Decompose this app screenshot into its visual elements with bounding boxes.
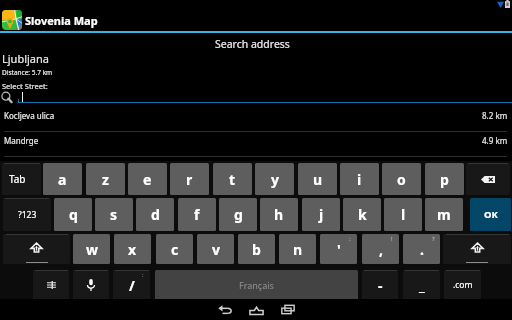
staticText: s — [110, 205, 118, 224]
staticText: h — [274, 205, 284, 224]
button[interactable]: - — [362, 270, 398, 300]
button[interactable]: q — [54, 198, 92, 231]
button[interactable]: g — [219, 198, 257, 231]
staticText: / — [129, 276, 135, 295]
staticText: x — [128, 240, 137, 259]
staticText: u — [313, 170, 323, 189]
staticText: , — [379, 240, 383, 259]
button[interactable]: e — [128, 163, 167, 195]
staticText: Search address — [215, 37, 290, 51]
button[interactable]: , — [362, 234, 399, 264]
button[interactable]: w — [73, 234, 110, 264]
button[interactable]: o — [382, 163, 421, 195]
button[interactable]: Back — [209, 299, 241, 320]
staticText: n — [293, 240, 303, 259]
staticText: Ljubljana — [2, 51, 49, 66]
staticText: z — [102, 170, 109, 189]
button[interactable]: Backspace — [466, 163, 510, 195]
button[interactable]: Home — [240, 299, 272, 320]
staticText: . — [420, 240, 424, 259]
staticText: Mandrge — [4, 135, 39, 146]
button[interactable]: . — [403, 234, 440, 264]
staticText: j — [319, 205, 324, 224]
staticText: Kocljeva ulica — [4, 110, 55, 121]
button[interactable]: Mandrge — [0, 128, 512, 152]
button[interactable]: Voice input — [73, 270, 109, 300]
button[interactable]: .com — [444, 270, 481, 300]
staticText: Slovenia Map — [25, 13, 98, 28]
staticText: k — [358, 205, 367, 224]
staticText: _ — [419, 276, 425, 295]
staticText: ' — [337, 240, 341, 259]
staticText: w — [86, 240, 98, 259]
staticText: 4.9 km — [482, 135, 508, 146]
button[interactable]: Recents — [272, 299, 304, 320]
staticText: p — [440, 170, 449, 189]
button[interactable]: _ — [403, 270, 440, 300]
button[interactable]: Space — [155, 270, 358, 300]
staticText: : — [142, 271, 144, 279]
button[interactable]: x — [114, 234, 151, 264]
button[interactable]: v — [197, 234, 234, 264]
button[interactable]: Shift — [443, 234, 511, 264]
staticText: .com — [453, 279, 473, 291]
button[interactable]: m — [425, 198, 463, 231]
button[interactable]: u — [298, 163, 337, 195]
button[interactable]: Kocljeva ulica — [0, 103, 512, 127]
staticText: m — [437, 205, 451, 224]
button[interactable]: l — [384, 198, 422, 231]
staticText: t — [229, 170, 236, 189]
staticText: q — [69, 205, 78, 224]
staticText: - — [378, 276, 383, 295]
staticText: y — [271, 170, 279, 189]
staticText: r — [186, 170, 193, 189]
button[interactable]: j — [302, 198, 340, 231]
staticText: OK — [484, 208, 498, 221]
staticText: e — [143, 170, 152, 189]
button[interactable]: y — [255, 163, 294, 195]
button[interactable]: d — [136, 198, 174, 231]
button[interactable]: ?123 — [3, 198, 51, 231]
button[interactable]: t — [213, 163, 252, 195]
staticText: ? — [432, 235, 435, 243]
button[interactable]: i — [340, 163, 379, 195]
staticText: Français — [239, 279, 274, 291]
button[interactable]: h — [260, 198, 298, 231]
button[interactable]: ' — [320, 234, 357, 264]
staticText: v — [212, 240, 220, 259]
button[interactable]: c — [156, 234, 193, 264]
button[interactable]: n — [279, 234, 316, 264]
staticText: g — [234, 205, 243, 224]
staticText: ! — [391, 235, 393, 243]
staticText: : — [349, 235, 351, 243]
staticText: a — [58, 170, 67, 189]
staticText: 8.2 km — [482, 110, 508, 121]
staticText: Tab — [9, 172, 26, 186]
button[interactable]: k — [343, 198, 381, 231]
staticText: f — [194, 205, 200, 224]
button[interactable]: p — [425, 163, 464, 195]
button[interactable]: OK — [470, 198, 511, 231]
button[interactable]: b — [238, 234, 275, 264]
button[interactable]: r — [170, 163, 209, 195]
staticText: ?123 — [18, 209, 37, 221]
staticText: c — [171, 240, 179, 259]
button[interactable]: Change keyboard — [33, 270, 69, 300]
staticText: o — [397, 170, 406, 189]
button[interactable]: Shift — [3, 234, 70, 264]
staticText: Distance: 5.7 km — [2, 68, 53, 77]
button[interactable]: / — [113, 270, 150, 300]
staticText: l — [401, 205, 406, 224]
button[interactable]: a — [43, 163, 82, 195]
staticText: Select Street: — [2, 81, 48, 91]
staticText: i — [357, 170, 362, 189]
button[interactable]: Tab — [2, 163, 41, 195]
staticText: d — [151, 205, 160, 224]
staticText: b — [252, 240, 261, 259]
button[interactable]: s — [95, 198, 133, 231]
button[interactable]: f — [178, 198, 216, 231]
button[interactable]: z — [86, 163, 125, 195]
